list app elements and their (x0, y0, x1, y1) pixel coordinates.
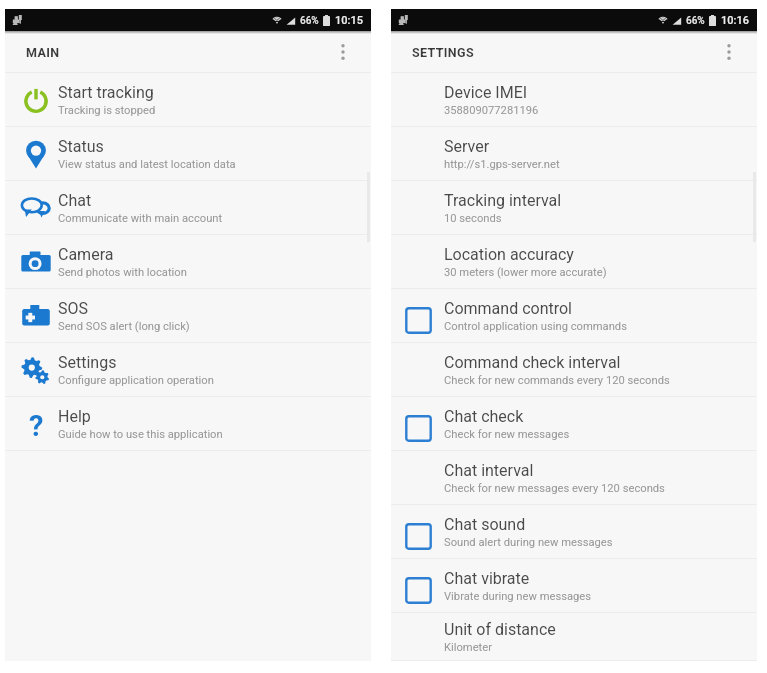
button[interactable]: Camera (5, 235, 371, 289)
staticText: Unit of distance (444, 620, 556, 639)
staticText: SETTINGS (412, 45, 474, 60)
button[interactable]: Start tracking (5, 73, 371, 127)
staticText: http://s1.gps-server.net (444, 158, 560, 171)
staticText: Control application using commands (444, 320, 627, 333)
staticText: Check for new messages every 120 seconds (444, 482, 665, 495)
button[interactable]: Status (5, 127, 371, 181)
staticText: Tracking is stopped (58, 104, 156, 117)
staticText: SOS (58, 299, 89, 318)
staticText: Check for new messages (444, 428, 570, 441)
button[interactable]: Chat (5, 181, 371, 235)
staticText: Communicate with main account (58, 212, 223, 225)
staticText: Command control (444, 299, 572, 318)
staticText: Chat check (444, 407, 524, 426)
staticText: 358809077281196 (444, 104, 539, 117)
staticText: Tracking interval (444, 191, 562, 210)
button[interactable]: Unit of distance (391, 613, 757, 661)
button[interactable]: Chat vibrate (391, 559, 757, 613)
staticText: Check for new commands every 120 seconds (444, 374, 670, 387)
staticText: Kilometer (444, 641, 492, 654)
button[interactable]: Command control (391, 289, 757, 343)
button[interactable]: More options (714, 37, 744, 67)
button[interactable]: Location accuracy (391, 235, 757, 289)
button[interactable]: More options (328, 37, 358, 67)
button[interactable]: Chat interval (391, 451, 757, 505)
button[interactable]: Settings (5, 343, 371, 397)
staticText: 10:15 (335, 14, 363, 27)
staticText: Chat (58, 191, 92, 210)
staticText: Send photos with location (58, 266, 187, 279)
staticText: Command check interval (444, 353, 621, 372)
staticText: View status and latest location data (58, 158, 236, 171)
button[interactable]: Command check interval (391, 343, 757, 397)
staticText: 66% (686, 15, 705, 27)
staticText: Status (58, 137, 104, 156)
staticText: Guide how to use this application (58, 428, 223, 441)
staticText: Vibrate during new messages (444, 590, 592, 603)
staticText: ? (29, 409, 44, 439)
staticText: 10 seconds (444, 212, 502, 225)
button[interactable]: SOS (5, 289, 371, 343)
staticText: Chat interval (444, 461, 534, 480)
staticText: Device IMEI (444, 83, 528, 102)
staticText: 30 meters (lower more accurate) (444, 266, 607, 279)
button[interactable]: Server (391, 127, 757, 181)
staticText: Sound alert during new messages (444, 536, 613, 549)
button[interactable]: Tracking interval (391, 181, 757, 235)
staticText: Chat sound (444, 515, 526, 534)
staticText: 10:16 (721, 14, 749, 27)
staticText: Camera (58, 245, 114, 264)
staticText: MAIN (26, 45, 60, 60)
staticText: Configure application operation (58, 374, 214, 387)
button[interactable]: ? (5, 397, 371, 451)
staticText: Settings (58, 353, 117, 372)
button[interactable]: Device IMEI (391, 73, 757, 127)
staticText: Location accuracy (444, 245, 574, 264)
staticText: Chat vibrate (444, 569, 530, 588)
staticText: Server (444, 137, 490, 156)
staticText: 66% (300, 15, 319, 27)
staticText: Help (58, 407, 91, 426)
button[interactable]: Chat check (391, 397, 757, 451)
staticText: Send SOS alert (long click) (58, 320, 190, 333)
button[interactable]: Chat sound (391, 505, 757, 559)
staticText: Start tracking (58, 83, 154, 102)
